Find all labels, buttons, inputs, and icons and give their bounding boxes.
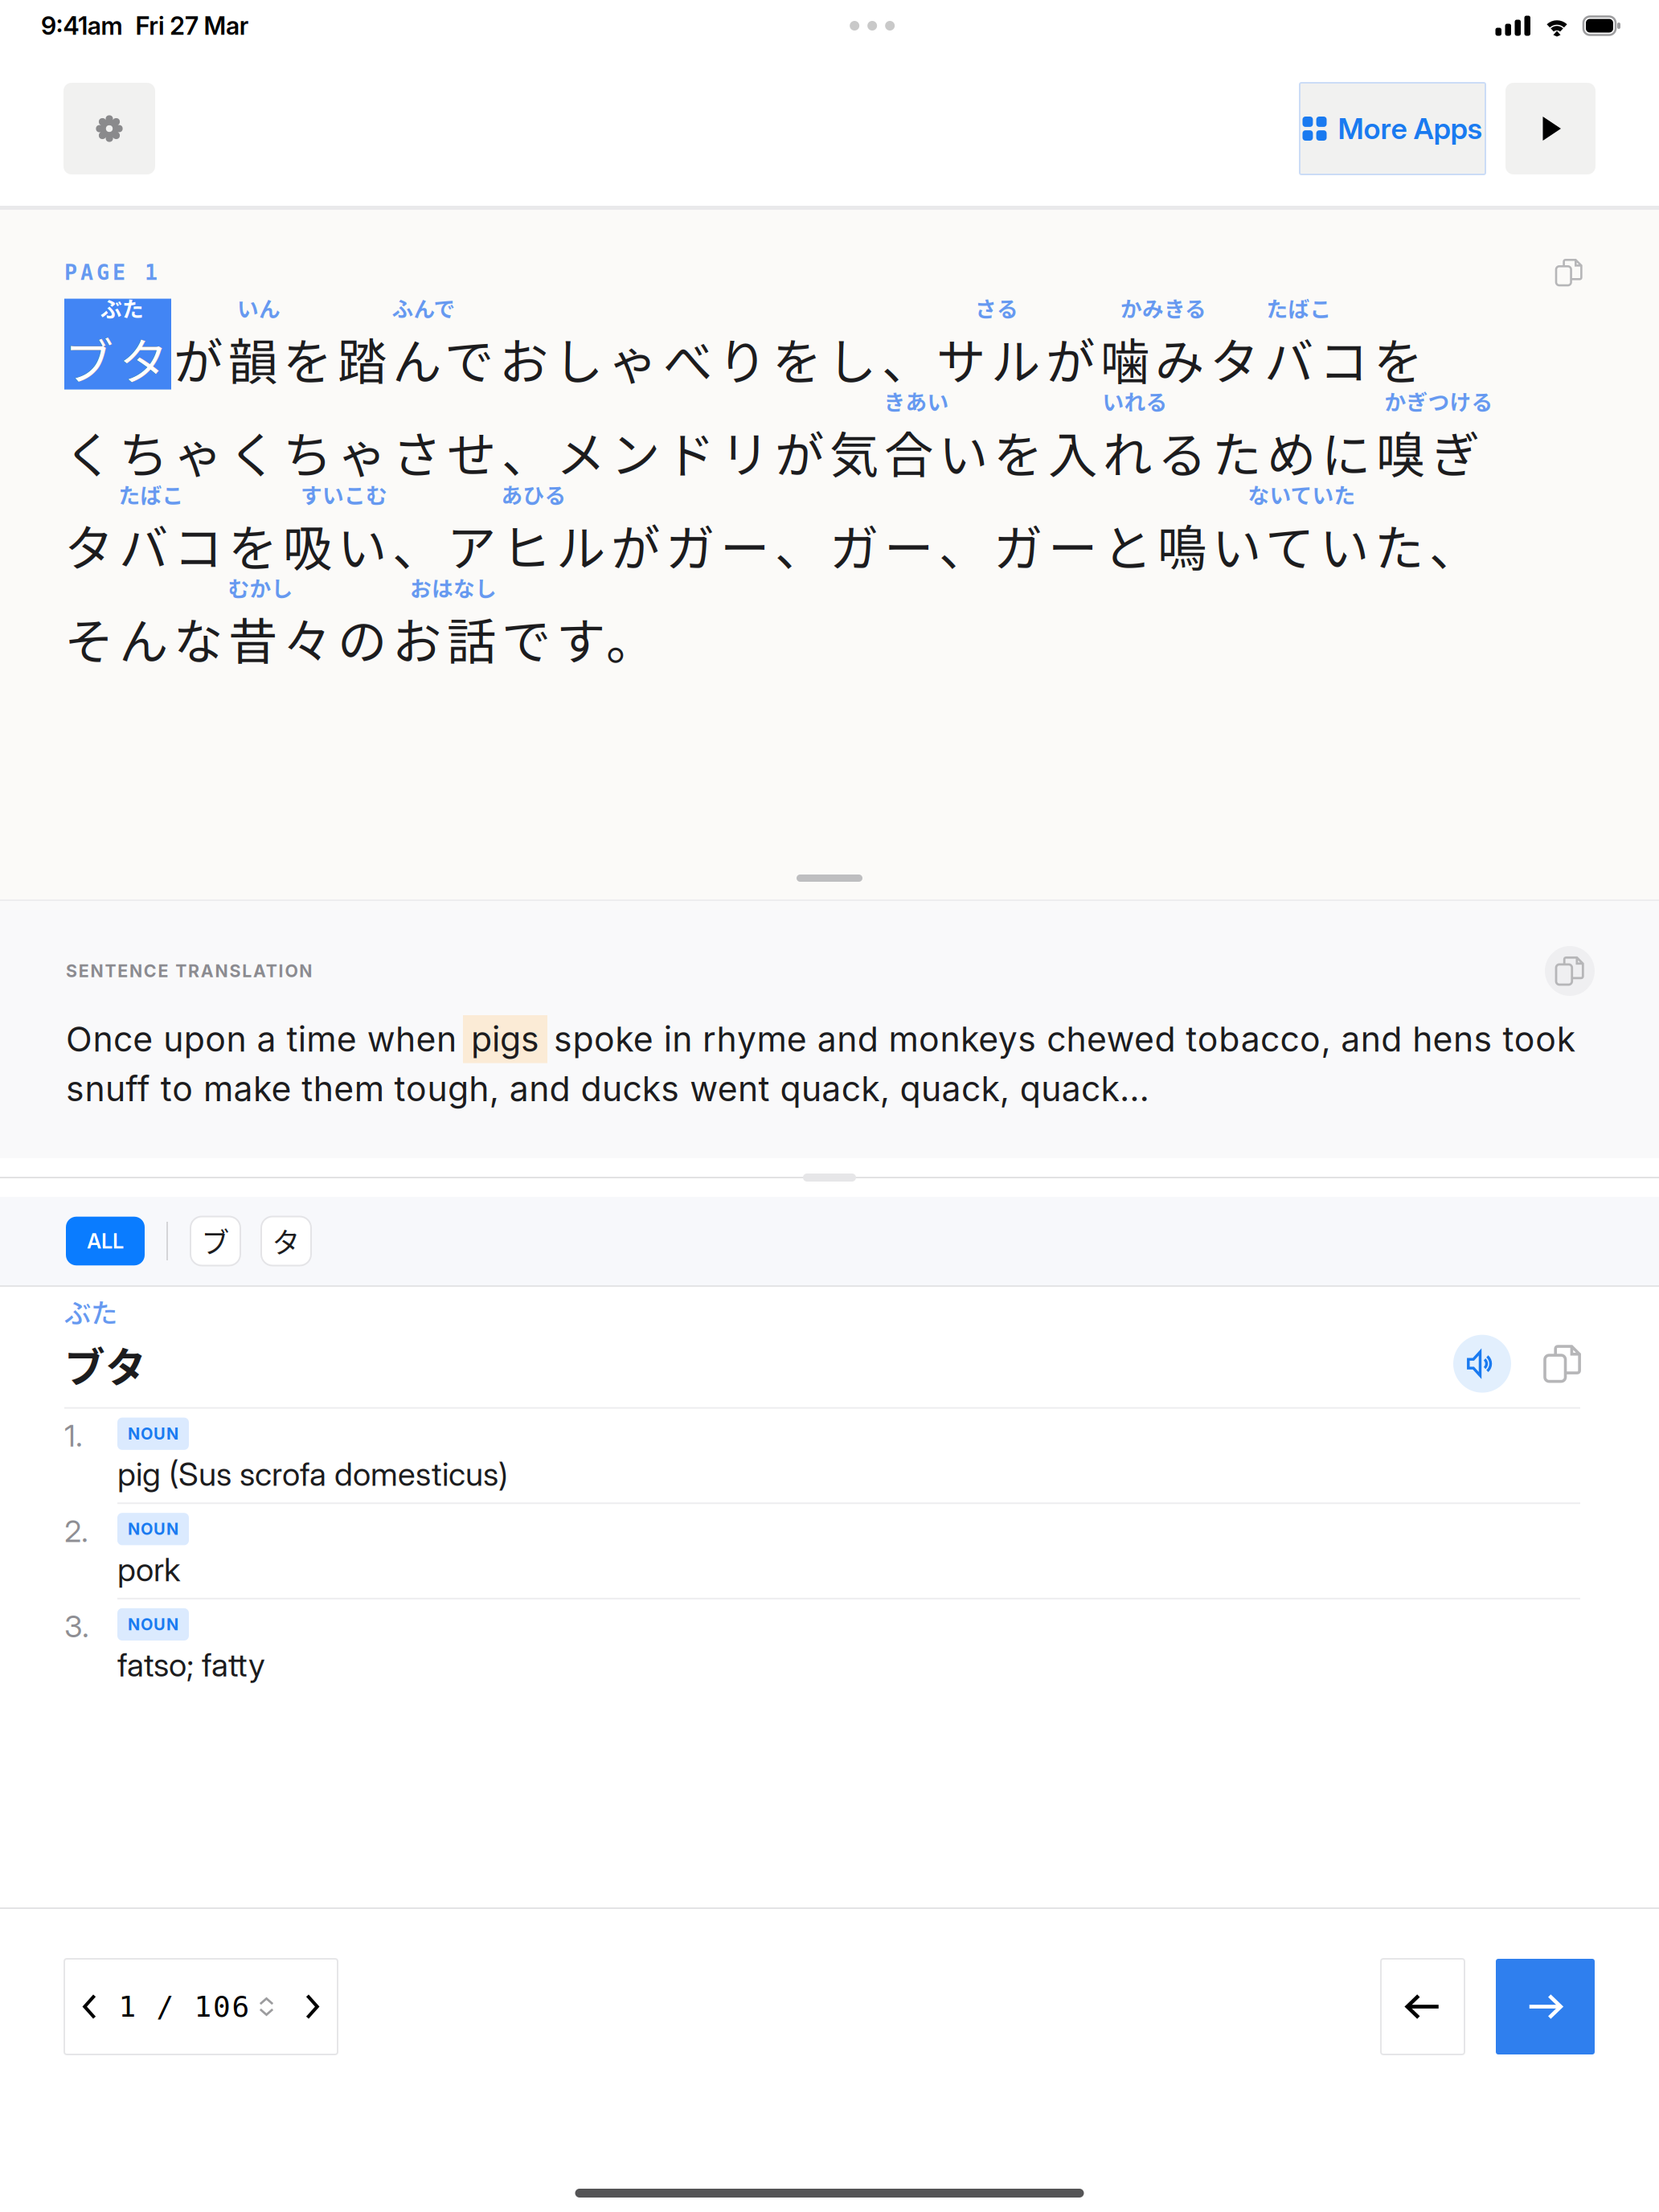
staticText: 2. [64,1513,88,1549]
button[interactable]: Copy translation [1545,946,1595,996]
staticText: ぶた [100,292,144,323]
staticText: ないていた [1248,478,1356,510]
button[interactable]: Play pronunciation [1453,1335,1511,1393]
button[interactable]: Copy sentence [1556,260,1582,285]
staticText: かぎつける [1385,385,1493,416]
staticText: いん [237,292,281,323]
staticText: snuff to make them tough, and ducks went… [66,1068,1149,1109]
staticText: ブタが韻を踏んでおしゃべりをし、サルが噛みタバコを [64,323,1423,394]
staticText: SENTENCE TRANSLATION [66,961,312,981]
staticText: ブタ [64,1335,146,1394]
staticText: pig (Sus scrofa domesticus) [117,1455,508,1494]
staticText: Fri 27 Mar [135,11,249,41]
button[interactable]: Previous page [62,1972,119,2041]
button[interactable]: タ [261,1217,311,1266]
staticText: 3. [64,1608,89,1645]
staticText: さる [975,292,1018,323]
button[interactable]: Play [1505,83,1596,174]
staticText: きあい [884,385,949,416]
staticText: pigs [471,1018,539,1060]
staticText: ぶた [64,1292,117,1330]
staticText: おはなし [410,572,497,603]
staticText: spoke in rhyme and monkeys chewed tobacc… [554,1018,1575,1060]
button[interactable]: Copy word [1545,1346,1580,1381]
button[interactable]: ブ [190,1217,240,1266]
button[interactable]: Previous sentence [1381,1959,1464,2054]
button[interactable]: Choose page [250,1972,283,2041]
staticText: fatso; fatty [117,1645,265,1684]
staticText: タバコを吸い、アヒルがガー、ガー、ガーと鳴いていた、 [64,509,1478,581]
staticText: タ [272,1221,300,1261]
staticText: ブタ [64,323,168,394]
staticText: ふんで [392,292,455,323]
button[interactable]: Next sentence [1496,1959,1595,2054]
staticText: くちゃくちゃさせ、メンドリが気合いを入れるために嗅ぎ [64,416,1480,487]
staticText: NOUN [128,1424,178,1443]
staticText: ALL [87,1229,124,1253]
staticText: あひる [501,478,566,510]
staticText: pork [117,1550,180,1589]
staticText: むかし [228,572,293,603]
button[interactable]: More Apps [1300,83,1485,174]
button[interactable]: Settings [63,83,155,174]
staticText: More Apps [1338,111,1483,146]
staticText: NOUN [128,1519,178,1539]
staticText: ブ [201,1221,229,1261]
staticText: すいこむ [301,478,387,510]
staticText: 1. [64,1418,83,1454]
button[interactable]: ALL [66,1217,145,1265]
staticText: Once upon a time when [66,1018,457,1060]
staticText: 9:41am [41,11,123,41]
staticText: PAGE 1 [64,260,158,285]
staticText: たばこ [119,478,184,510]
staticText: かみきる [1120,292,1206,323]
staticText: 1 / 106 [119,1990,250,2023]
staticText: いれる [1102,385,1167,416]
staticText: たばこ [1266,292,1331,323]
staticText: NOUN [128,1615,178,1634]
staticText: そんな昔々のお話です。 [64,603,655,674]
button[interactable]: Next page [283,1972,340,2041]
